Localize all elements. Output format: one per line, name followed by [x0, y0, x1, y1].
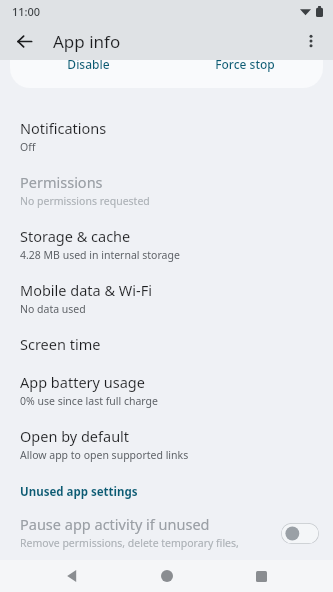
- button[interactable]: Pause app activity if unused toggle: [281, 523, 319, 544]
- button[interactable]: More options: [295, 25, 327, 57]
- button[interactable]: Mobile data & Wi-Fi: [0, 271, 333, 325]
- button[interactable]: Recent apps: [239, 560, 283, 592]
- staticText: Disable: [67, 60, 110, 72]
- staticText: 4.28 MB used in internal storage: [20, 248, 180, 262]
- staticText: Force stop: [215, 60, 275, 72]
- staticText: Open by default: [20, 426, 130, 446]
- button[interactable]: Disable: [10, 60, 166, 88]
- staticText: Permissions: [20, 172, 103, 192]
- staticText: Notifications: [20, 118, 107, 138]
- button[interactable]: Screen time: [0, 325, 333, 363]
- staticText: Pause app activity if unused: [20, 514, 210, 534]
- staticText: App battery usage: [20, 372, 145, 392]
- staticText: Screen time: [20, 334, 101, 354]
- button[interactable]: App battery usage: [0, 363, 333, 417]
- button[interactable]: Storage & cache: [0, 217, 333, 271]
- button[interactable]: Force stop: [166, 60, 323, 88]
- button[interactable]: Back: [8, 25, 40, 57]
- staticText: No permissions requested: [20, 194, 150, 208]
- button[interactable]: Pause app activity if unused: [0, 506, 333, 560]
- staticText: Off: [20, 140, 36, 154]
- button[interactable]: Home: [145, 560, 189, 592]
- staticText: Mobile data & Wi-Fi: [20, 280, 153, 300]
- staticText: 11:00: [12, 4, 41, 19]
- staticText: 0% use since last full charge: [20, 394, 158, 408]
- staticText: Remove permissions, delete temporary fil…: [20, 536, 239, 552]
- staticText: Storage & cache: [20, 226, 131, 246]
- staticText: No data used: [20, 302, 86, 316]
- button[interactable]: Open by default: [0, 417, 333, 471]
- staticText: Allow app to open supported links: [20, 448, 189, 462]
- button[interactable]: Permissions: [0, 163, 333, 217]
- button[interactable]: Back: [50, 560, 94, 592]
- button[interactable]: Notifications: [0, 109, 333, 163]
- staticText: Unused app settings: [20, 484, 138, 500]
- staticText: App info: [53, 30, 121, 53]
